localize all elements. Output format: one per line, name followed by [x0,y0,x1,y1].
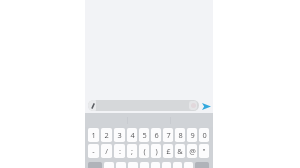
button[interactable] [184,162,193,168]
staticText: 3 [117,130,122,140]
button[interactable]: & [175,144,185,158]
button[interactable]: ; [127,144,137,158]
button[interactable]: - [88,144,99,158]
staticText: 2 [104,130,109,140]
button[interactable]: £ [163,144,173,158]
button[interactable]: ) [151,144,161,158]
button[interactable]: 3 [114,128,125,142]
staticText: 5 [142,130,147,140]
staticText: 8 [178,130,183,140]
button[interactable]: " [199,144,209,158]
button[interactable]: Emoji keyboard [189,101,197,110]
button[interactable]: Send message [200,101,212,112]
staticText: : [119,146,121,156]
button[interactable]: / [101,144,112,158]
button[interactable]: 5 [139,128,149,142]
button[interactable]: 7 [163,128,173,142]
button[interactable]: 2 [101,128,112,142]
button[interactable]: ( [139,144,149,158]
button[interactable] [151,162,160,168]
staticText: 0 [202,130,207,140]
staticText: 1 [91,130,96,140]
button[interactable]: 9 [187,128,197,142]
staticText: £ [166,146,171,156]
staticText: 7 [166,130,171,140]
staticText: - [92,146,95,156]
staticText: ) [155,146,158,156]
staticText: ; [131,146,133,156]
staticText: 6 [154,130,159,140]
button[interactable]: 6 [151,128,161,142]
button[interactable] [173,162,182,168]
button[interactable]: : [114,144,125,158]
staticText: / [105,146,108,156]
staticText: ( [143,146,146,156]
staticText: 9 [190,130,195,140]
button[interactable]: Backspace [195,162,209,168]
button[interactable]: Emoji keyboard [88,100,199,111]
button[interactable] [128,162,138,168]
button[interactable]: 1 [88,128,99,142]
staticText: @ [189,146,196,156]
button[interactable]: 0 [199,128,209,142]
button[interactable]: @ [187,144,197,158]
button[interactable]: 4 [127,128,137,142]
button[interactable] [162,162,171,168]
button[interactable]: 8 [175,128,185,142]
staticText: & [177,146,183,156]
staticText: " [202,146,206,156]
button[interactable] [116,162,126,168]
staticText: 4 [130,130,135,140]
button[interactable] [104,162,114,168]
button[interactable]: Symbols [88,162,102,168]
button[interactable] [140,162,149,168]
